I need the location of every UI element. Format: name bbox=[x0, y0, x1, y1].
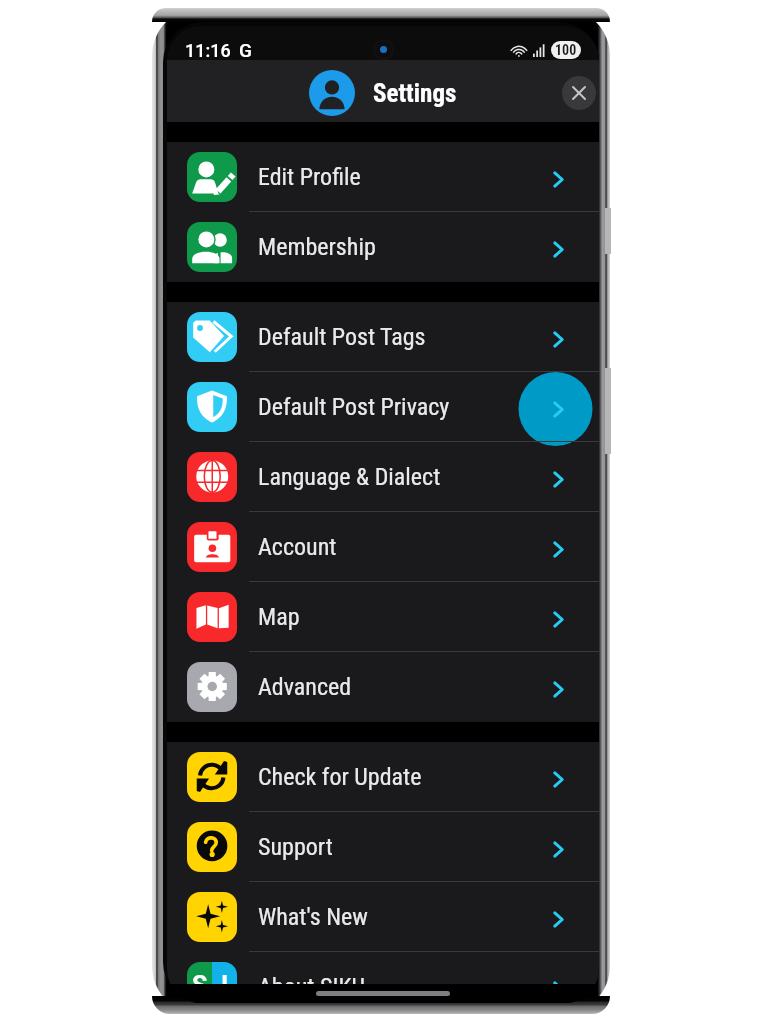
staticText: Settings bbox=[373, 79, 457, 108]
staticText: Map bbox=[258, 603, 557, 631]
button[interactable]: What's New bbox=[167, 882, 599, 952]
button[interactable]: Default Post Privacy bbox=[167, 372, 599, 442]
staticText: Default Post Privacy bbox=[258, 393, 557, 421]
staticText: S bbox=[192, 971, 208, 984]
staticText: What's New bbox=[258, 903, 557, 931]
button[interactable]: Edit Profile bbox=[167, 142, 599, 212]
button[interactable]: S bbox=[167, 952, 599, 984]
button[interactable]: Support bbox=[167, 812, 599, 882]
staticText: 100 bbox=[555, 42, 577, 58]
button[interactable]: Membership bbox=[167, 212, 599, 282]
button[interactable]: Default Post Tags bbox=[167, 302, 599, 372]
staticText: Check for Update bbox=[258, 763, 557, 791]
staticText: Support bbox=[258, 833, 557, 861]
staticText: Language & Dialect bbox=[258, 463, 557, 491]
button[interactable]: Language & Dialect bbox=[167, 442, 599, 512]
staticText: G bbox=[239, 39, 252, 61]
staticText: About SIKU bbox=[258, 973, 557, 984]
button[interactable]: Map bbox=[167, 582, 599, 652]
staticText: Advanced bbox=[258, 673, 557, 701]
button[interactable]: Check for Update bbox=[167, 742, 599, 812]
button[interactable]: Account bbox=[167, 512, 599, 582]
button[interactable]: Close bbox=[562, 76, 596, 110]
staticText: Default Post Tags bbox=[258, 323, 557, 351]
staticText: I bbox=[221, 971, 229, 984]
staticText: 11:16 bbox=[185, 40, 231, 61]
staticText: Account bbox=[258, 533, 557, 561]
button[interactable]: Advanced bbox=[167, 652, 599, 722]
staticText: Edit Profile bbox=[258, 163, 557, 191]
staticText: Membership bbox=[258, 233, 557, 261]
